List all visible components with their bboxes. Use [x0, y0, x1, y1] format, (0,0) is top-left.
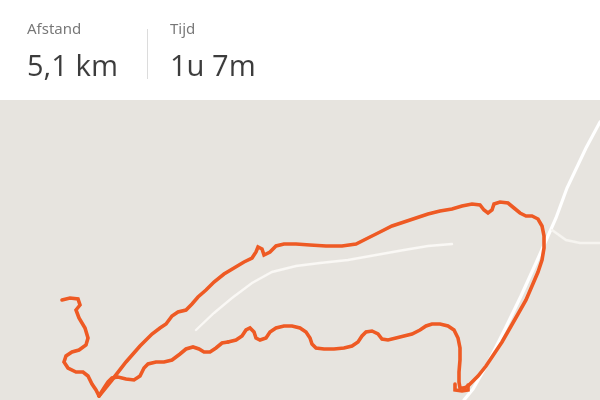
staticText: Tijd — [170, 18, 196, 38]
staticText: 5,1 km — [27, 45, 119, 84]
button[interactable]: Tijd — [148, 0, 600, 100]
staticText: 1u 7m — [170, 45, 256, 84]
staticText: Afstand — [27, 18, 82, 38]
button[interactable]: Afstand — [0, 0, 147, 100]
button[interactable]: Route map — [0, 100, 600, 400]
